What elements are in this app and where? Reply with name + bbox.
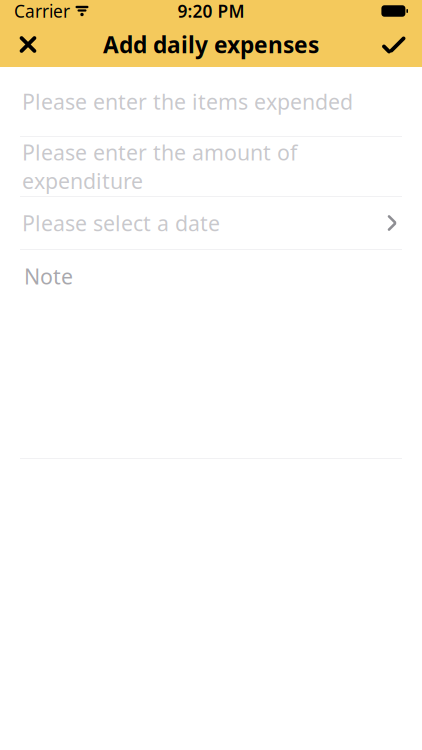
button[interactable]: Note	[0, 250, 422, 458]
button[interactable]: Please enter the amount of expenditure	[0, 137, 422, 196]
staticText: Please enter the items expended	[22, 87, 353, 116]
staticText: Add daily expenses	[103, 29, 319, 59]
button[interactable]: Please select a date	[0, 197, 422, 249]
staticText: Please select a date	[22, 209, 220, 237]
staticText: 9:20 PM	[177, 0, 244, 22]
staticText: Note	[24, 262, 73, 290]
staticText: Carrier	[14, 0, 70, 22]
staticText: Please enter the amount of expenditure	[22, 138, 297, 195]
button[interactable]: Close	[6, 22, 50, 66]
button[interactable]: Save	[372, 22, 416, 66]
button[interactable]: Please enter the items expended	[0, 67, 422, 136]
